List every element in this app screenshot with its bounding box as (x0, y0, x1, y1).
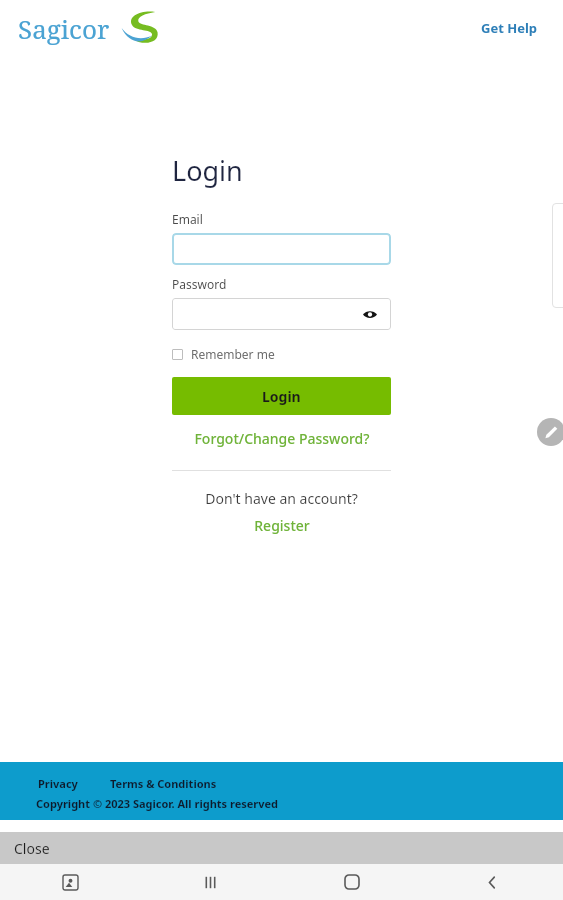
staticText: Copyright © 2023 Sagicor. All rights res… (36, 796, 279, 811)
other: Sagicor logo (120, 9, 160, 47)
button[interactable]: Sagicor (18, 9, 160, 47)
staticText: Login (262, 387, 301, 406)
button[interactable]: Edit (537, 418, 563, 446)
staticText: Sagicor (18, 11, 110, 46)
button[interactable]: Remember me (172, 346, 275, 362)
button[interactable]: Close (0, 832, 563, 864)
button[interactable]: Show password (172, 298, 391, 330)
staticText: Register (254, 516, 310, 535)
button[interactable]: Home (281, 864, 422, 900)
staticText: Get Help (481, 19, 537, 37)
button[interactable]: Keyboard (0, 864, 140, 900)
button[interactable]: Show password (361, 305, 379, 323)
staticText: Remember me (191, 346, 275, 362)
button[interactable]: Terms & Conditions (110, 776, 217, 791)
staticText: Forgot/Change Password? (194, 429, 370, 448)
staticText: Privacy (38, 776, 78, 791)
staticText: Email (172, 211, 203, 227)
staticText: Close (14, 839, 50, 858)
button[interactable]: Login (172, 377, 391, 415)
button[interactable]: Privacy (38, 776, 78, 791)
button[interactable]: Recent apps (140, 864, 281, 900)
staticText: Login (172, 152, 243, 189)
button[interactable]: Register (172, 516, 391, 535)
button[interactable]: Forgot/Change Password? (172, 429, 391, 448)
staticText: Don't have an account? (205, 489, 358, 508)
button[interactable]: Get Help (477, 15, 541, 41)
button[interactable] (172, 233, 391, 265)
button[interactable]: Back (422, 864, 563, 900)
staticText: Terms & Conditions (110, 776, 217, 791)
staticText: Password (172, 276, 227, 292)
